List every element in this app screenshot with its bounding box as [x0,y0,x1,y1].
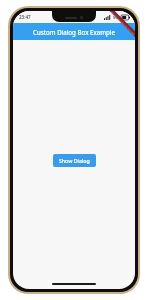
staticText: 5G [113,15,119,20]
other: Watermark ribbon [109,11,135,37]
staticText: Custom Dialog Box Example [33,28,115,36]
staticText: Show Dialog [59,157,90,164]
staticText: 23:47 [19,14,31,20]
button[interactable]: Show Dialog [53,154,96,167]
